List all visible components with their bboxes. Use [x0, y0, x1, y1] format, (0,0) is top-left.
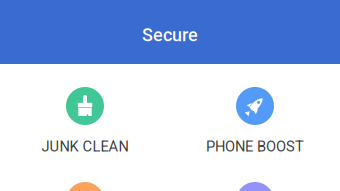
staticText: JUNK CLEAN	[41, 138, 128, 155]
staticText: Secure	[142, 24, 198, 46]
button[interactable]: CPU COOLER	[0, 159, 170, 191]
button[interactable]: APP MANAGER	[170, 159, 340, 191]
button[interactable]: PHONE BOOST	[170, 64, 340, 159]
button[interactable]: JUNK CLEAN	[0, 64, 170, 159]
staticText: PHONE BOOST	[206, 138, 304, 155]
